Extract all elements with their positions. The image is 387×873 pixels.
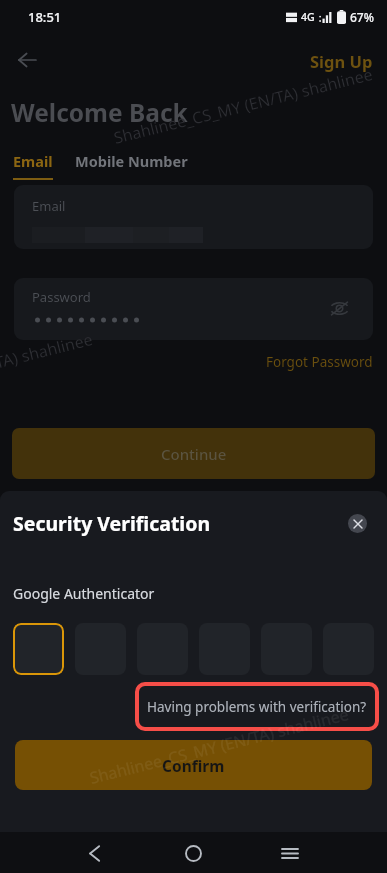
staticText: 67% bbox=[350, 9, 374, 25]
staticText: Sign Up bbox=[310, 50, 373, 72]
button[interactable]: Email bbox=[14, 185, 373, 249]
button[interactable]: Continue bbox=[12, 428, 375, 479]
staticText: 4G bbox=[301, 10, 315, 24]
staticText: Shahlinee_CS_MY (EN/TA) shahlinee bbox=[0, 328, 95, 414]
staticText: Forgot Password bbox=[266, 353, 373, 371]
staticText: 18:51 bbox=[28, 8, 62, 26]
staticText: Shahlinee_CS_MY (EN/TA) shahlinee bbox=[87, 703, 351, 789]
staticText: Email bbox=[32, 197, 66, 215]
button[interactable]: Password bbox=[14, 278, 373, 340]
staticText: Confirm bbox=[162, 755, 225, 776]
staticText: Having problems with verification? bbox=[147, 698, 367, 716]
button[interactable]: Back bbox=[74, 833, 114, 873]
button[interactable]: Having problems with verification? bbox=[135, 682, 379, 731]
button[interactable]: Close bbox=[348, 514, 367, 533]
button[interactable]: Back bbox=[7, 40, 47, 80]
staticText: Shahlinee_CS_MY (EN/TA) shahlinee bbox=[111, 63, 375, 149]
staticText: Password bbox=[32, 288, 91, 306]
button[interactable]: Mobile Number bbox=[66, 147, 201, 171]
staticText: Continue bbox=[161, 444, 227, 464]
button[interactable]: Recent apps bbox=[270, 833, 310, 873]
button[interactable]: Home bbox=[173, 833, 213, 873]
staticText: Welcome Back bbox=[11, 96, 188, 129]
staticText: Mobile Number bbox=[75, 151, 188, 171]
button[interactable]: Confirm bbox=[15, 740, 372, 790]
button[interactable]: Show password bbox=[319, 288, 359, 328]
button[interactable]: Digit 1 bbox=[13, 623, 64, 675]
button[interactable]: Email bbox=[0, 147, 66, 180]
button[interactable]: Sign Up bbox=[296, 44, 387, 78]
staticText: Email bbox=[13, 151, 53, 171]
staticText: Security Verification bbox=[13, 510, 211, 537]
button[interactable]: Forgot Password bbox=[252, 349, 387, 375]
staticText: Google Authenticator bbox=[13, 584, 155, 603]
